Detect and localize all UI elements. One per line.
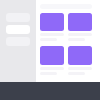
button[interactable] (68, 46, 92, 75)
button[interactable] (40, 46, 64, 75)
button[interactable] (68, 13, 92, 41)
button[interactable] (40, 13, 64, 41)
button[interactable]: Library (6, 25, 30, 34)
